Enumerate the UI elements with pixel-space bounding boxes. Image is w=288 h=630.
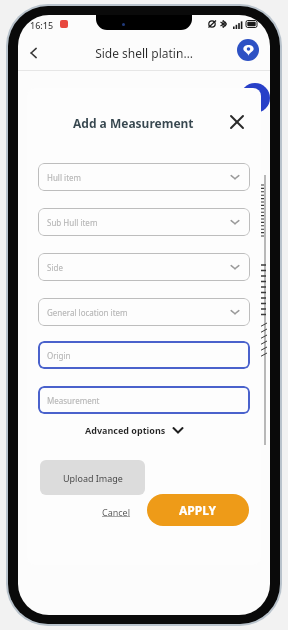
staticText: Advanced options — [85, 424, 166, 436]
button[interactable]: Measurement — [38, 386, 250, 414]
staticText: Side — [47, 262, 63, 273]
staticText: Hull item — [47, 172, 82, 183]
staticText: Measurement — [47, 395, 100, 406]
button[interactable]: General location item — [38, 298, 250, 326]
button[interactable]: Sub Hull item — [38, 208, 250, 236]
staticText: Cancel — [102, 506, 131, 518]
staticText: 16:15 — [30, 19, 54, 31]
staticText: APPLY — [179, 502, 217, 518]
staticText: General location item — [47, 307, 128, 318]
staticText: Sub Hull item — [47, 217, 98, 228]
staticText: Upload Image — [63, 472, 123, 484]
button[interactable]: Origin — [38, 341, 250, 369]
button[interactable]: Location — [237, 39, 259, 61]
button[interactable]: Close — [225, 110, 249, 134]
staticText: Origin — [47, 350, 71, 361]
button[interactable]: Hull item — [38, 163, 250, 191]
button[interactable]: Advanced options — [85, 424, 184, 436]
button[interactable]: Side — [38, 253, 250, 281]
staticText: Add a Measurement — [73, 115, 194, 131]
button[interactable]: APPLY — [147, 494, 249, 526]
button[interactable]: Upload Image — [40, 460, 145, 495]
button[interactable]: Cancel — [97, 502, 135, 522]
staticText: Side shell platin… — [95, 45, 193, 61]
button[interactable]: Back — [22, 41, 46, 65]
